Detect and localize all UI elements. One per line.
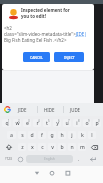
staticText: w bbox=[15, 120, 20, 127]
button[interactable]: a bbox=[7, 131, 16, 139]
staticText: d bbox=[30, 132, 34, 139]
button[interactable]: o bbox=[83, 119, 91, 127]
staticText: 5 bbox=[48, 119, 50, 123]
button[interactable]: c bbox=[38, 143, 46, 151]
button[interactable]: m bbox=[78, 143, 86, 151]
staticText: q bbox=[5, 120, 9, 127]
staticText: u bbox=[65, 120, 69, 127]
button[interactable]: HIDE bbox=[44, 107, 55, 113]
staticText: t bbox=[46, 120, 48, 127]
button[interactable]: z bbox=[18, 143, 26, 151]
staticText: English bbox=[44, 157, 55, 161]
button[interactable] bbox=[16, 155, 24, 163]
staticText: 1 bbox=[8, 119, 10, 123]
staticText: 2 bbox=[18, 119, 20, 123]
button[interactable]: s bbox=[18, 131, 26, 139]
staticText: j bbox=[71, 132, 73, 139]
staticText: r bbox=[36, 120, 39, 127]
staticText: x bbox=[31, 144, 34, 151]
button[interactable]: v bbox=[48, 143, 56, 151]
staticText: m bbox=[80, 144, 85, 151]
staticText: Inspected element for you to edit! bbox=[21, 7, 70, 19]
button[interactable]: e bbox=[23, 119, 31, 127]
button[interactable]: INJECT bbox=[54, 52, 84, 62]
staticText: ?123 bbox=[5, 157, 12, 161]
button[interactable]: English bbox=[26, 155, 73, 163]
button[interactable]: g bbox=[48, 131, 56, 139]
button[interactable] bbox=[35, 166, 69, 183]
button[interactable]: k bbox=[78, 131, 86, 139]
staticText: class="slim-video-metadata-title">JIDE| bbox=[4, 31, 87, 37]
button[interactable]: u bbox=[63, 119, 71, 127]
button[interactable] bbox=[69, 166, 103, 183]
staticText: a bbox=[10, 132, 13, 139]
staticText: n bbox=[70, 144, 74, 151]
button[interactable]: q bbox=[2, 119, 11, 127]
staticText: <h2 bbox=[4, 25, 12, 31]
staticText: Big Fish Eating Eel Fish .</h2> bbox=[4, 37, 67, 43]
button[interactable]: f bbox=[38, 131, 46, 139]
button[interactable]: JUDE bbox=[70, 107, 81, 113]
staticText: 6 bbox=[58, 119, 60, 123]
button[interactable]: l bbox=[88, 131, 96, 139]
button[interactable]: y bbox=[53, 119, 61, 127]
button[interactable]: d bbox=[28, 131, 36, 139]
button[interactable]: r bbox=[33, 119, 41, 127]
staticText: 3 bbox=[28, 119, 30, 123]
staticText: g bbox=[50, 132, 54, 139]
staticText: 7 bbox=[68, 119, 70, 123]
button[interactable]: ?123 bbox=[2, 155, 14, 163]
button[interactable]: JIDE bbox=[18, 107, 27, 113]
staticText: INJECT bbox=[64, 55, 75, 60]
staticText: p bbox=[95, 120, 99, 127]
button[interactable]: p bbox=[93, 119, 101, 127]
staticText: b bbox=[60, 144, 64, 151]
staticText: 9 bbox=[88, 119, 90, 123]
button[interactable]: CANCEL bbox=[23, 52, 50, 62]
button[interactable]: w bbox=[13, 119, 21, 127]
button[interactable]: h bbox=[58, 131, 66, 139]
staticText: v bbox=[51, 144, 54, 151]
staticText: y bbox=[56, 120, 59, 127]
staticText: l bbox=[91, 132, 93, 139]
staticText: h bbox=[60, 132, 64, 139]
staticText: c bbox=[41, 144, 44, 151]
staticText: 0 bbox=[98, 119, 100, 123]
button[interactable]: i bbox=[73, 119, 81, 127]
button[interactable]: b bbox=[58, 143, 66, 151]
button[interactable]: j bbox=[68, 131, 76, 139]
staticText: s bbox=[21, 132, 24, 139]
button[interactable] bbox=[88, 143, 101, 151]
button[interactable] bbox=[2, 143, 16, 151]
staticText: 8 bbox=[78, 119, 80, 123]
staticText: z bbox=[21, 144, 24, 151]
staticText: i bbox=[76, 120, 78, 127]
staticText: k bbox=[81, 132, 84, 139]
staticText: e bbox=[26, 120, 29, 127]
staticText: o bbox=[85, 120, 89, 127]
button[interactable]: n bbox=[68, 143, 76, 151]
button[interactable] bbox=[85, 155, 101, 163]
staticText: . bbox=[78, 156, 80, 163]
staticText: f bbox=[41, 132, 43, 139]
staticText: CANCEL bbox=[30, 55, 43, 60]
button[interactable]: . bbox=[75, 155, 83, 163]
staticText: 4 bbox=[38, 119, 40, 123]
button[interactable]: x bbox=[28, 143, 36, 151]
button[interactable]: t bbox=[43, 119, 51, 127]
